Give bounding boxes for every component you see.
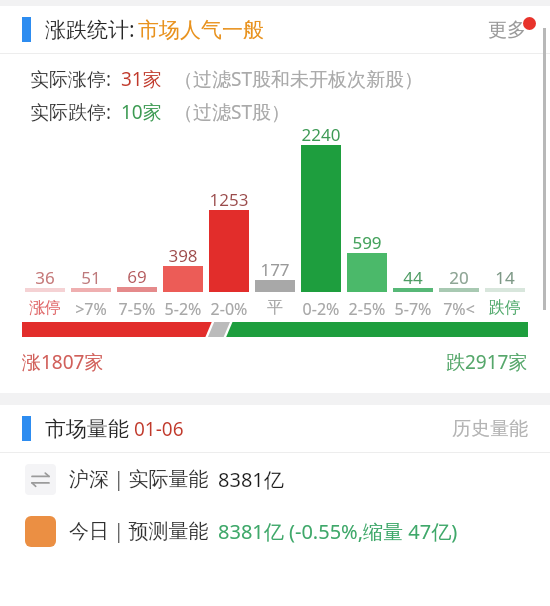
staticText: 14 bbox=[482, 266, 528, 289]
staticText: 01-06 bbox=[134, 416, 184, 442]
staticText: 599 bbox=[344, 231, 390, 254]
staticText: 市场量能 bbox=[45, 416, 129, 442]
staticText: 市场人气一般 bbox=[138, 17, 264, 43]
staticText: 平 bbox=[252, 298, 298, 318]
staticText: 今日｜预测量能 bbox=[69, 519, 209, 544]
staticText: 44 bbox=[390, 266, 436, 289]
staticText: 8381亿 (-0.55%,缩量 47亿) bbox=[218, 518, 458, 545]
staticText: 涨跌统计: bbox=[45, 15, 135, 44]
staticText: 0-2% bbox=[298, 298, 344, 320]
staticText: （过滤ST股） bbox=[174, 99, 290, 125]
staticText: 涨1807家 bbox=[22, 349, 104, 375]
staticText: 7%< bbox=[436, 298, 482, 320]
staticText: >7% bbox=[68, 298, 114, 320]
staticText: 跌2917家 bbox=[446, 349, 528, 375]
staticText: 31家 bbox=[121, 66, 162, 92]
staticText: 跌停 bbox=[482, 298, 528, 318]
button[interactable]: 更多 bbox=[484, 12, 530, 48]
other: 沪深 bbox=[25, 464, 56, 495]
staticText: 51 bbox=[68, 266, 114, 289]
staticText: 更多 bbox=[488, 18, 526, 42]
staticText: 5-2% bbox=[160, 298, 206, 320]
staticText: 177 bbox=[252, 258, 298, 281]
staticText: 实际涨停: bbox=[30, 66, 112, 92]
staticText: 20 bbox=[436, 266, 482, 289]
button[interactable]: 今日 bbox=[0, 505, 550, 557]
staticText: 36 bbox=[22, 266, 68, 289]
staticText: 2240 bbox=[298, 123, 344, 146]
staticText: 398 bbox=[160, 244, 206, 267]
staticText: 69 bbox=[114, 265, 160, 288]
button[interactable]: 市场量能 bbox=[0, 405, 550, 452]
staticText: 5-7% bbox=[390, 298, 436, 320]
button[interactable]: 沪深 bbox=[0, 453, 550, 505]
other: 今日 bbox=[25, 516, 56, 547]
staticText: 实际跌停: bbox=[30, 99, 112, 125]
button[interactable]: 涨跌统计: bbox=[0, 6, 550, 53]
staticText: 历史量能 bbox=[452, 417, 528, 441]
staticText: 1253 bbox=[206, 188, 252, 211]
staticText: 8381亿 bbox=[218, 466, 284, 493]
staticText: （过滤ST股和未开板次新股） bbox=[174, 66, 423, 92]
staticText: 2-0% bbox=[206, 298, 252, 320]
staticText: 7-5% bbox=[114, 298, 160, 320]
staticText: 沪深｜实际量能 bbox=[69, 467, 209, 492]
staticText: 2-5% bbox=[344, 298, 390, 320]
button[interactable]: 历史量能 bbox=[448, 411, 532, 447]
staticText: 涨停 bbox=[22, 298, 68, 318]
staticText: 10家 bbox=[121, 99, 162, 125]
